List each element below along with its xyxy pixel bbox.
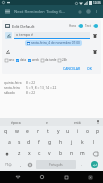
button[interactable]: Recent apps	[61, 172, 71, 182]
button[interactable]: d	[24, 137, 34, 148]
button[interactable]: ,	[16, 159, 25, 170]
staticText: 8 = 22	[26, 91, 35, 95]
button[interactable]: data	[16, 58, 27, 62]
button[interactable]: Back	[13, 172, 23, 182]
staticText: k	[81, 139, 84, 146]
button[interactable]: está	[62, 118, 93, 126]
button[interactable]: Português	[36, 160, 76, 169]
button[interactable]: z	[14, 148, 24, 159]
button[interactable]: e	[22, 126, 33, 137]
staticText: 8 = 22	[26, 81, 35, 85]
staticText: 24h	[62, 58, 68, 62]
button[interactable]: Shift	[0, 148, 14, 159]
button[interactable]: Hora	[69, 24, 83, 28]
button[interactable]: da tarde	[41, 58, 57, 62]
button[interactable]: week	[28, 58, 40, 62]
button[interactable]: p	[93, 126, 103, 137]
button[interactable]: g	[44, 137, 55, 148]
button[interactable]: w	[11, 126, 22, 137]
staticText: j	[71, 139, 73, 146]
staticText: da tarde	[45, 58, 57, 62]
button[interactable]: Search	[84, 7, 93, 16]
staticText: z	[18, 150, 21, 157]
staticText: época	[11, 120, 21, 125]
staticText: r	[37, 128, 40, 135]
staticText: d	[27, 139, 31, 146]
staticText: i	[77, 128, 79, 135]
button[interactable]: Filter	[75, 7, 84, 16]
staticText: CANCELAR	[63, 66, 81, 71]
staticText: e	[26, 128, 29, 135]
button[interactable]: h	[55, 137, 66, 148]
staticText: u	[66, 128, 70, 135]
staticText: m	[80, 150, 85, 157]
staticText: l	[93, 139, 95, 146]
button[interactable]: Screenshot	[85, 172, 95, 182]
staticText: sexta-feira, 4 de novembro 07:00	[31, 41, 80, 45]
button[interactable]: j	[66, 137, 77, 148]
button[interactable]: l	[88, 137, 99, 148]
button[interactable]: u	[63, 126, 73, 137]
button[interactable]: ?1☺	[0, 159, 16, 170]
button[interactable]: v	[44, 148, 55, 159]
button[interactable]: s	[14, 137, 24, 148]
staticText: Next Reminder: Today 6…	[14, 9, 75, 15]
staticText: ano	[9, 58, 15, 62]
staticText: p	[96, 128, 100, 135]
button[interactable]: Change language	[25, 159, 35, 170]
staticText: 12:36	[93, 1, 101, 5]
button[interactable]: Backspace	[88, 148, 103, 159]
staticText: v	[48, 150, 51, 157]
button[interactable]: o tempo é	[14, 32, 90, 39]
button[interactable]: e	[31, 118, 62, 126]
staticText: ?1☺	[5, 163, 12, 167]
staticText: t	[47, 128, 49, 135]
staticText: sábado	[4, 91, 26, 95]
staticText: a	[8, 139, 11, 146]
button[interactable]: ano	[5, 58, 15, 62]
button[interactable]: f	[34, 137, 44, 148]
button[interactable]: m	[77, 148, 88, 159]
button[interactable]: a	[4, 137, 14, 148]
button[interactable]: CANCELAR	[61, 65, 83, 72]
button[interactable]: b	[55, 148, 66, 159]
button[interactable]: x	[24, 148, 34, 159]
button[interactable]: q	[0, 126, 11, 137]
button[interactable]: Home	[37, 172, 47, 182]
button[interactable]: OK	[85, 65, 94, 72]
staticText: Português	[49, 163, 63, 167]
staticText: y	[57, 128, 60, 135]
button[interactable]: Voice input	[93, 118, 103, 126]
button[interactable]: y	[53, 126, 63, 137]
button[interactable]: r	[33, 126, 43, 137]
button[interactable]: Delete	[92, 49, 98, 55]
button[interactable]: c	[34, 148, 44, 159]
staticText: está	[74, 120, 81, 125]
staticText: Text	[85, 24, 91, 28]
button[interactable]: sexta-feira, 4 de novembro 07:00	[27, 41, 80, 45]
staticText: o tempo é	[16, 32, 34, 37]
button[interactable]: Text	[85, 24, 98, 28]
button[interactable]: n	[66, 148, 77, 159]
button[interactable]: 24h	[58, 58, 68, 62]
button[interactable]: k	[77, 137, 88, 148]
staticText: Hora	[69, 24, 76, 28]
button[interactable]: Enter	[87, 160, 102, 169]
button[interactable]: Open navigation menu	[3, 7, 12, 16]
button[interactable]: More options	[93, 8, 100, 15]
button[interactable]: Add attachment	[5, 49, 11, 55]
staticText: q	[4, 128, 8, 135]
staticText: week	[32, 58, 40, 62]
button[interactable]: época	[0, 118, 31, 126]
staticText: ,	[20, 162, 22, 167]
button[interactable]: o	[83, 126, 93, 137]
staticText: e	[46, 120, 48, 125]
staticText: h	[59, 139, 63, 146]
button[interactable]: Delete	[92, 33, 98, 39]
button[interactable]: i	[73, 126, 83, 137]
staticText: quinta-feira	[4, 81, 26, 85]
button[interactable]: t	[43, 126, 53, 137]
staticText: sexta-feira	[4, 86, 26, 90]
button[interactable]: Note icon	[5, 32, 12, 39]
